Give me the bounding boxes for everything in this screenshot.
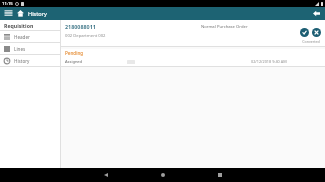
staticText: Assigned xyxy=(65,59,127,64)
staticText: Pending xyxy=(65,50,84,56)
button[interactable]: Reject xyxy=(312,28,321,37)
staticText: Requisition xyxy=(4,22,34,29)
staticText: Lines xyxy=(14,46,26,52)
staticText: Header xyxy=(14,34,30,40)
button[interactable]: History xyxy=(0,55,60,66)
button[interactable]: Approved xyxy=(300,28,309,37)
button[interactable]: Header xyxy=(0,31,60,42)
staticText: 11:15 xyxy=(2,1,13,7)
staticText: History xyxy=(28,10,47,18)
button[interactable]: Open navigation menu xyxy=(3,8,14,19)
staticText: 2180088011 xyxy=(65,23,96,30)
staticText: Converted xyxy=(302,39,320,44)
button[interactable]: Home xyxy=(157,169,169,181)
staticText: Normal Purchase Order xyxy=(201,24,248,30)
button[interactable]: Recent apps xyxy=(214,169,226,181)
button[interactable]: Lines xyxy=(0,43,60,54)
button[interactable]: Assigned xyxy=(61,57,325,66)
button[interactable]: Home xyxy=(16,9,25,18)
staticText: History xyxy=(14,58,30,64)
staticText: 002 Department 002 xyxy=(65,33,106,39)
staticText: 02/12/2018 9:40 AM xyxy=(251,59,287,64)
button[interactable]: Back xyxy=(311,8,322,19)
button[interactable]: Back xyxy=(100,169,112,181)
